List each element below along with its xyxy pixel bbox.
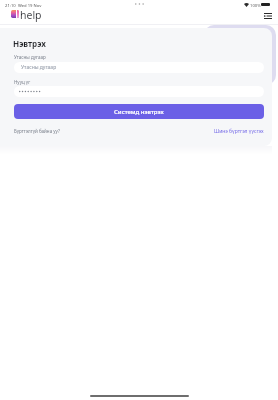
button[interactable]: Menu xyxy=(262,10,274,22)
staticText: Системд нэвтрэх xyxy=(114,108,164,116)
staticText: Утасны дугаар xyxy=(14,54,46,60)
staticText: Нэвтрэх xyxy=(13,38,46,49)
button[interactable]: Утасны дугаар xyxy=(14,62,264,73)
staticText: Утасны дугаар xyxy=(21,64,57,71)
button[interactable]: Системд нэвтрэх xyxy=(14,104,264,119)
staticText: 100% xyxy=(250,3,261,9)
button[interactable]: Бүртгэлгүй байна уу? xyxy=(14,128,60,134)
staticText: help xyxy=(20,8,42,22)
staticText: Нууц үг xyxy=(14,79,31,85)
staticText: 21:10 Wed 19 Nov xyxy=(5,3,42,9)
button[interactable] xyxy=(14,86,264,97)
button[interactable]: Шинэ бүртгэл үүсгэх xyxy=(214,128,264,135)
